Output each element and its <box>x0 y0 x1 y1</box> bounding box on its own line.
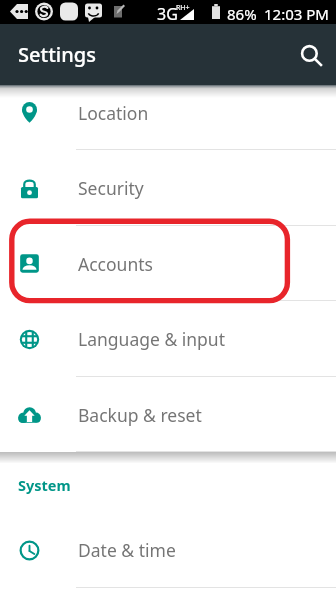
staticText: Settings <box>18 41 96 68</box>
button[interactable]: Search <box>293 37 329 73</box>
button[interactable]: Location <box>0 75 336 150</box>
staticText: Backup & reset <box>78 403 202 427</box>
staticText: 3G <box>157 3 178 25</box>
staticText: 86% <box>227 4 257 24</box>
staticText: System <box>18 475 71 495</box>
staticText: Accounts <box>78 252 153 276</box>
button[interactable]: Security <box>0 150 336 226</box>
button[interactable]: Accounts <box>0 226 336 301</box>
staticText: RH+ <box>176 3 190 13</box>
button[interactable]: Date & time <box>0 512 336 588</box>
button[interactable]: Backup & reset <box>0 377 336 452</box>
button[interactable]: Language & input <box>0 301 336 377</box>
staticText: Language & input <box>78 327 225 351</box>
staticText: 12:03 PM <box>264 4 329 24</box>
staticText: Location <box>78 101 149 125</box>
staticText: Date & time <box>78 538 176 562</box>
staticText: Security <box>78 176 144 200</box>
